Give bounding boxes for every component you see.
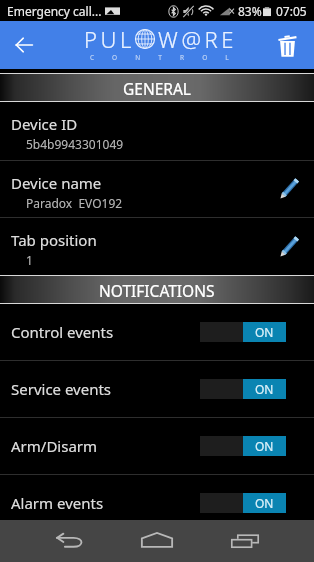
- staticText: Service events: [11, 379, 112, 399]
- button[interactable]: Delete: [271, 29, 303, 61]
- button[interactable]: Service events: [0, 361, 314, 417]
- button[interactable]: Edit Device name: [273, 173, 305, 205]
- button[interactable]: Tab position: [0, 218, 314, 275]
- staticText: NOTIFICATIONS: [99, 280, 215, 301]
- staticText: 83%: [238, 3, 262, 19]
- staticText: ON: [255, 495, 274, 511]
- button[interactable]: Home: [131, 520, 183, 562]
- staticText: Paradox EVO192: [26, 195, 123, 211]
- staticText: PUL: [84, 24, 135, 54]
- staticText: Device ID: [11, 114, 78, 134]
- button[interactable]: Back: [6, 27, 42, 63]
- staticText: Arm/Disarm: [11, 436, 98, 456]
- staticText: Device name: [11, 173, 102, 193]
- staticText: Alarm events: [11, 493, 104, 513]
- button[interactable]: Device ID: [0, 102, 314, 160]
- staticText: 5b4b9943301049: [26, 136, 124, 152]
- button[interactable]: Back: [44, 520, 96, 562]
- staticText: Emergency call...: [7, 3, 102, 19]
- button[interactable]: Device name: [0, 161, 314, 217]
- button[interactable]: Recent apps: [219, 520, 271, 562]
- button[interactable]: Arm/Disarm: [0, 418, 314, 474]
- staticText: 1: [26, 252, 33, 268]
- staticText: ON: [255, 438, 274, 454]
- button[interactable]: Control events: [0, 304, 314, 360]
- staticText: 07:05: [276, 3, 307, 19]
- staticText: CONTROL: [90, 53, 247, 62]
- staticText: W@RE: [158, 24, 238, 54]
- button[interactable]: Alarm events: [0, 475, 314, 531]
- staticText: Control events: [11, 322, 114, 342]
- staticText: ON: [255, 324, 274, 340]
- staticText: Tab position: [11, 230, 97, 250]
- button[interactable]: Edit Tab position: [273, 231, 305, 263]
- staticText: GENERAL: [123, 78, 191, 99]
- staticText: ON: [255, 381, 274, 397]
